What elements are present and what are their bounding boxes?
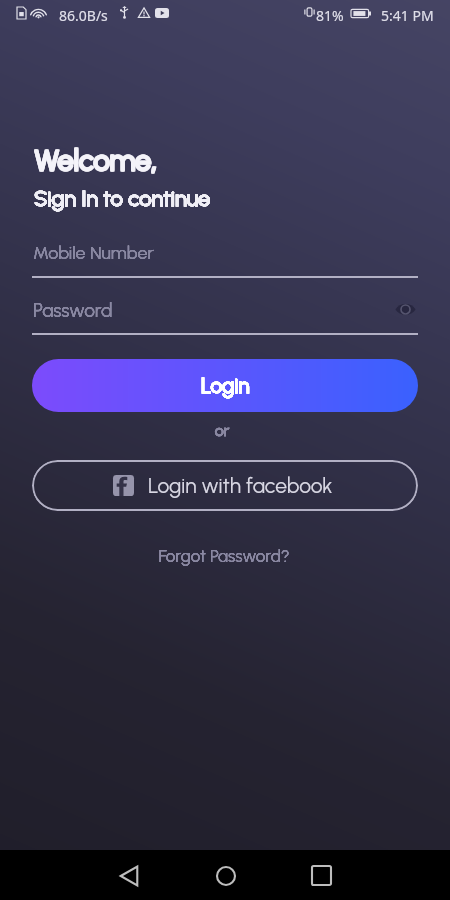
staticText: Login: [201, 373, 250, 398]
staticText: Login: [201, 373, 250, 398]
staticText: Forgot Password?: [0, 546, 449, 566]
staticText: Password: [33, 299, 113, 322]
staticText: Welcome,: [34, 142, 157, 177]
staticText: 5:41 PM: [381, 6, 434, 25]
staticText: Mobile Number: [33, 242, 154, 264]
staticText: Welcome,: [34, 143, 157, 178]
staticText: Sign In to continue: [34, 185, 211, 211]
staticText: Forgot Password?: [0, 546, 449, 566]
staticText: Welcome,: [35, 142, 158, 177]
staticText: or: [0, 421, 447, 440]
button[interactable]: Forgot Password?: [0, 546, 449, 566]
button[interactable]: Login: [32, 359, 418, 412]
staticText: Login: [201, 373, 250, 398]
staticText: Password: [33, 299, 113, 322]
staticText: or: [0, 421, 447, 440]
staticText: 86.0B/s: [59, 6, 108, 25]
staticText: Welcome,: [35, 143, 158, 178]
staticText: Forgot Password?: [0, 546, 449, 566]
staticText: Login: [201, 373, 250, 398]
staticText: Mobile Number: [33, 242, 154, 264]
button[interactable]: Back: [104, 851, 153, 900]
staticText: Sign In to continue: [34, 185, 211, 211]
staticText: 81%: [316, 6, 344, 25]
staticText: Login with facebook: [148, 473, 333, 498]
button[interactable]: Show password: [390, 294, 420, 324]
staticText: or: [0, 421, 447, 440]
staticText: Forgot Password?: [0, 546, 449, 566]
staticText: Sign In to continue: [34, 185, 211, 211]
button[interactable]: Login with facebook: [32, 460, 418, 511]
button[interactable]: Recent apps: [297, 851, 346, 900]
staticText: Mobile Number: [33, 242, 154, 264]
staticText: Password: [33, 299, 113, 322]
staticText: Password: [33, 299, 113, 322]
staticText: Sign In to continue: [34, 185, 211, 211]
button[interactable]: Home: [201, 851, 250, 900]
staticText: or: [0, 421, 447, 440]
staticText: Mobile Number: [33, 242, 154, 264]
